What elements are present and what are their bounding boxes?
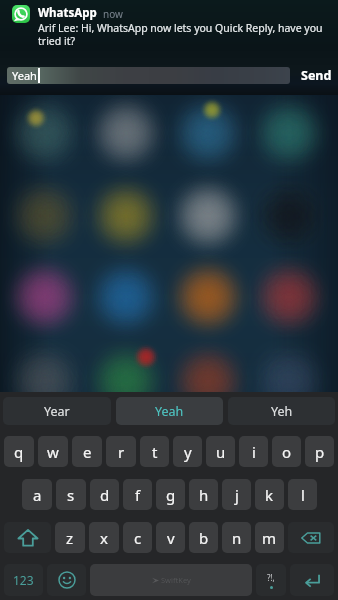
button[interactable]: k bbox=[255, 479, 284, 510]
staticText: Arif Lee: Hi, WhatsApp now lets you Quic… bbox=[38, 21, 332, 48]
button[interactable]: d bbox=[90, 479, 119, 510]
button[interactable]: Send bbox=[298, 67, 335, 84]
button[interactable]: Year bbox=[3, 397, 111, 425]
button[interactable]: f bbox=[123, 479, 152, 510]
button[interactable]: Yeah bbox=[7, 67, 290, 84]
button[interactable]: p bbox=[305, 436, 334, 467]
button[interactable]: v bbox=[156, 522, 185, 553]
staticText: r bbox=[118, 442, 125, 462]
button[interactable]: h bbox=[189, 479, 218, 510]
button[interactable]: r bbox=[106, 436, 136, 467]
button[interactable]: y bbox=[173, 436, 202, 467]
staticText: l bbox=[301, 485, 305, 505]
staticText: w bbox=[47, 442, 59, 462]
staticText: j bbox=[235, 485, 239, 505]
button[interactable]: u bbox=[206, 436, 235, 467]
button[interactable]: g bbox=[156, 479, 185, 510]
button[interactable]: o bbox=[272, 436, 301, 467]
staticText: s bbox=[67, 485, 75, 505]
button[interactable]: w bbox=[38, 436, 68, 467]
staticText: Year bbox=[44, 403, 70, 420]
button[interactable]: b bbox=[189, 522, 218, 553]
staticText: g bbox=[166, 485, 176, 505]
staticText: t bbox=[152, 442, 158, 462]
staticText: v bbox=[167, 528, 175, 548]
button[interactable]: Shift bbox=[4, 522, 51, 553]
staticText: q bbox=[14, 442, 24, 462]
staticText: b bbox=[199, 528, 209, 548]
button[interactable]: s bbox=[56, 479, 86, 510]
button[interactable]: Enter bbox=[290, 564, 334, 596]
staticText: Yeah bbox=[12, 68, 37, 83]
button[interactable]: 123 bbox=[4, 564, 43, 596]
staticText: x bbox=[100, 528, 108, 548]
staticText: c bbox=[134, 528, 142, 548]
staticText: ?!, bbox=[267, 572, 275, 583]
staticText: 123 bbox=[13, 572, 34, 588]
staticText: o bbox=[282, 442, 292, 462]
staticText: WhatsApp bbox=[38, 5, 97, 21]
staticText: f bbox=[135, 485, 141, 505]
staticText: n bbox=[232, 528, 242, 548]
staticText: a bbox=[33, 485, 42, 505]
staticText: Send bbox=[301, 67, 332, 84]
staticText: h bbox=[199, 485, 209, 505]
staticText: e bbox=[83, 442, 92, 462]
staticText: Yeah bbox=[155, 403, 184, 420]
button[interactable]: q bbox=[4, 436, 34, 467]
button[interactable]: Yeah bbox=[116, 397, 223, 425]
button[interactable]: e bbox=[72, 436, 102, 467]
button[interactable]: Punctuation bbox=[256, 564, 286, 596]
button[interactable]: z bbox=[55, 522, 85, 553]
button[interactable]: x bbox=[89, 522, 119, 553]
staticText: d bbox=[100, 485, 110, 505]
staticText: k bbox=[265, 485, 274, 505]
staticText: now bbox=[103, 7, 123, 21]
staticText: y bbox=[184, 442, 192, 462]
button[interactable]: j bbox=[222, 479, 251, 510]
button[interactable]: a bbox=[22, 479, 52, 510]
button[interactable]: Emoji bbox=[47, 564, 86, 596]
button[interactable]: m bbox=[255, 522, 284, 553]
button[interactable]: i bbox=[239, 436, 268, 467]
staticText: m bbox=[262, 528, 277, 548]
button[interactable]: Backspace bbox=[288, 522, 334, 553]
button[interactable]: n bbox=[222, 522, 251, 553]
button[interactable]: Yeh bbox=[228, 397, 335, 425]
button[interactable]: t bbox=[140, 436, 169, 467]
button[interactable]: l bbox=[288, 479, 317, 510]
staticText: SwiftKey bbox=[161, 575, 191, 585]
staticText: p bbox=[315, 442, 325, 462]
button[interactable]: c bbox=[123, 522, 152, 553]
staticText: i bbox=[252, 442, 256, 462]
staticText: u bbox=[216, 442, 226, 462]
staticText: z bbox=[66, 528, 74, 548]
staticText: Yeh bbox=[271, 403, 293, 420]
